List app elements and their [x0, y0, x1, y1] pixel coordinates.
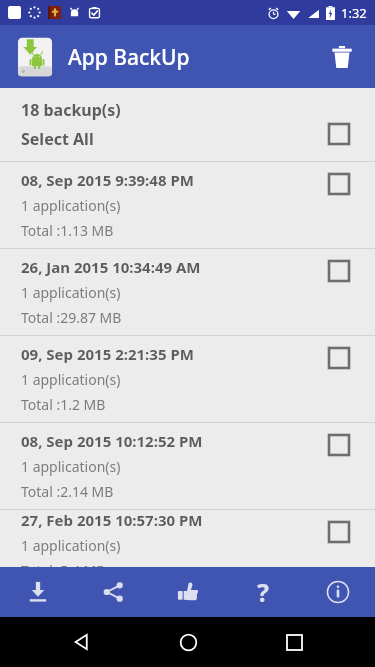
button[interactable]: Select all checkbox [327, 122, 351, 146]
button[interactable]: Share [75, 567, 150, 617]
button[interactable]: 09, Sep 2015 2:21:35 PM [0, 336, 375, 422]
button[interactable]: Recents [269, 617, 319, 667]
button[interactable]: 26, Jan 2015 10:34:49 AM [0, 249, 375, 335]
staticText: 09, Sep 2015 2:21:35 PM [21, 344, 194, 364]
staticText: 08, Sep 2015 10:12:52 PM [21, 431, 203, 451]
button[interactable]: 08, Sep 2015 10:12:52 PM [0, 423, 375, 509]
button[interactable]: Select backup [327, 520, 351, 544]
button[interactable]: 08, Sep 2015 9:39:48 PM [0, 162, 375, 248]
staticText: 1 application(s) [21, 196, 121, 215]
staticText: 1 application(s) [21, 457, 121, 476]
button[interactable]: Help [225, 567, 300, 617]
button[interactable]: Select backup [327, 259, 351, 283]
staticText: 1 application(s) [21, 370, 121, 389]
button[interactable]: Home [163, 617, 213, 667]
staticText: 1 application(s) [21, 283, 121, 302]
button[interactable]: About [300, 567, 375, 617]
staticText: App BackUp [68, 43, 190, 72]
button[interactable]: 18 backup(s) [0, 88, 375, 161]
staticText: Total :2.14 MB [21, 482, 114, 501]
button[interactable]: Select backup [327, 172, 351, 196]
staticText: Total :5.4 MB [21, 561, 106, 567]
staticText: Total :29.87 MB [21, 308, 122, 327]
staticText: Total :1.13 MB [21, 221, 114, 240]
staticText: 26, Jan 2015 10:34:49 AM [21, 257, 201, 277]
staticText: 27, Feb 2015 10:57:30 PM [21, 510, 203, 530]
button[interactable]: Select backup [327, 433, 351, 457]
button[interactable]: Back [56, 617, 106, 667]
staticText: 1:32 [341, 4, 367, 22]
button[interactable]: Restore [0, 567, 75, 617]
button[interactable]: Select backup [327, 346, 351, 370]
staticText: Total :1.2 MB [21, 395, 106, 414]
staticText: 18 backup(s) [21, 99, 121, 121]
staticText: 1 application(s) [21, 536, 121, 555]
staticText: Select All [21, 128, 94, 150]
staticText: 08, Sep 2015 9:39:48 PM [21, 170, 194, 190]
button[interactable]: 27, Feb 2015 10:57:30 PM [0, 510, 375, 567]
button[interactable]: Delete [321, 36, 363, 78]
button[interactable]: Rate [150, 567, 225, 617]
staticText: ? [257, 575, 269, 609]
